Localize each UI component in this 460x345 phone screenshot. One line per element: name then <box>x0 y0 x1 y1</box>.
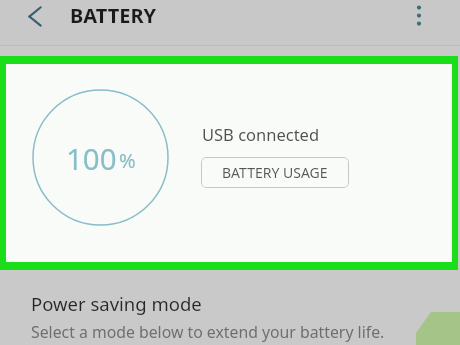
staticText: Power saving mode <box>31 291 202 316</box>
staticText: USB connected <box>202 123 320 145</box>
button[interactable]: More options <box>402 1 436 35</box>
staticText: % <box>119 147 136 174</box>
staticText: 100 <box>66 138 117 178</box>
staticText: BATTERY <box>70 2 157 29</box>
staticText: BATTERY USAGE <box>222 163 328 182</box>
button[interactable]: BATTERY USAGE <box>201 157 349 188</box>
button[interactable]: Power saving mode <box>0 278 460 345</box>
button[interactable]: 100 <box>6 64 452 262</box>
staticText: Select a mode below to extend your batte… <box>31 321 385 343</box>
button[interactable]: Back <box>18 3 52 37</box>
